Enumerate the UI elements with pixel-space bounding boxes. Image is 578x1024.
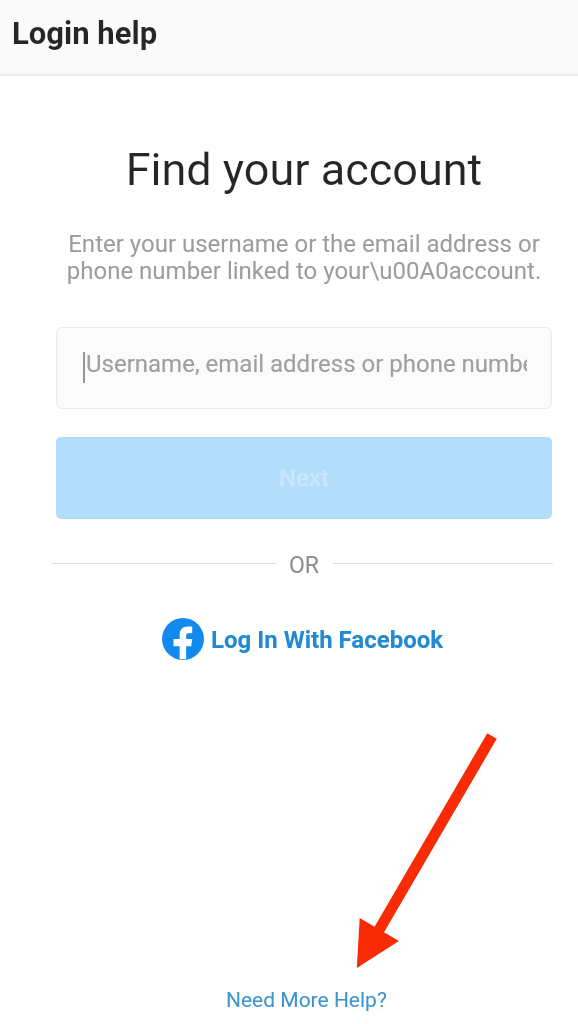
- button[interactable]: Log In With Facebook: [162, 617, 444, 661]
- staticText: Username, email address or phone number: [86, 350, 527, 378]
- staticText: Enter your username or the email address…: [15, 230, 578, 284]
- button[interactable]: Login help: [12, 15, 158, 51]
- staticText: Log In With Facebook: [211, 626, 444, 654]
- staticText: Find your account: [15, 143, 578, 196]
- staticText: Need More Help?: [226, 988, 387, 1013]
- button[interactable]: Username, email address or phone number: [56, 327, 552, 409]
- staticText: Next: [279, 464, 330, 492]
- staticText: OR: [289, 552, 319, 579]
- other: Annotation arrow pointing at Need More H…: [350, 730, 502, 978]
- button[interactable]: Need More Help?: [212, 982, 401, 1019]
- staticText: Login help: [12, 15, 158, 51]
